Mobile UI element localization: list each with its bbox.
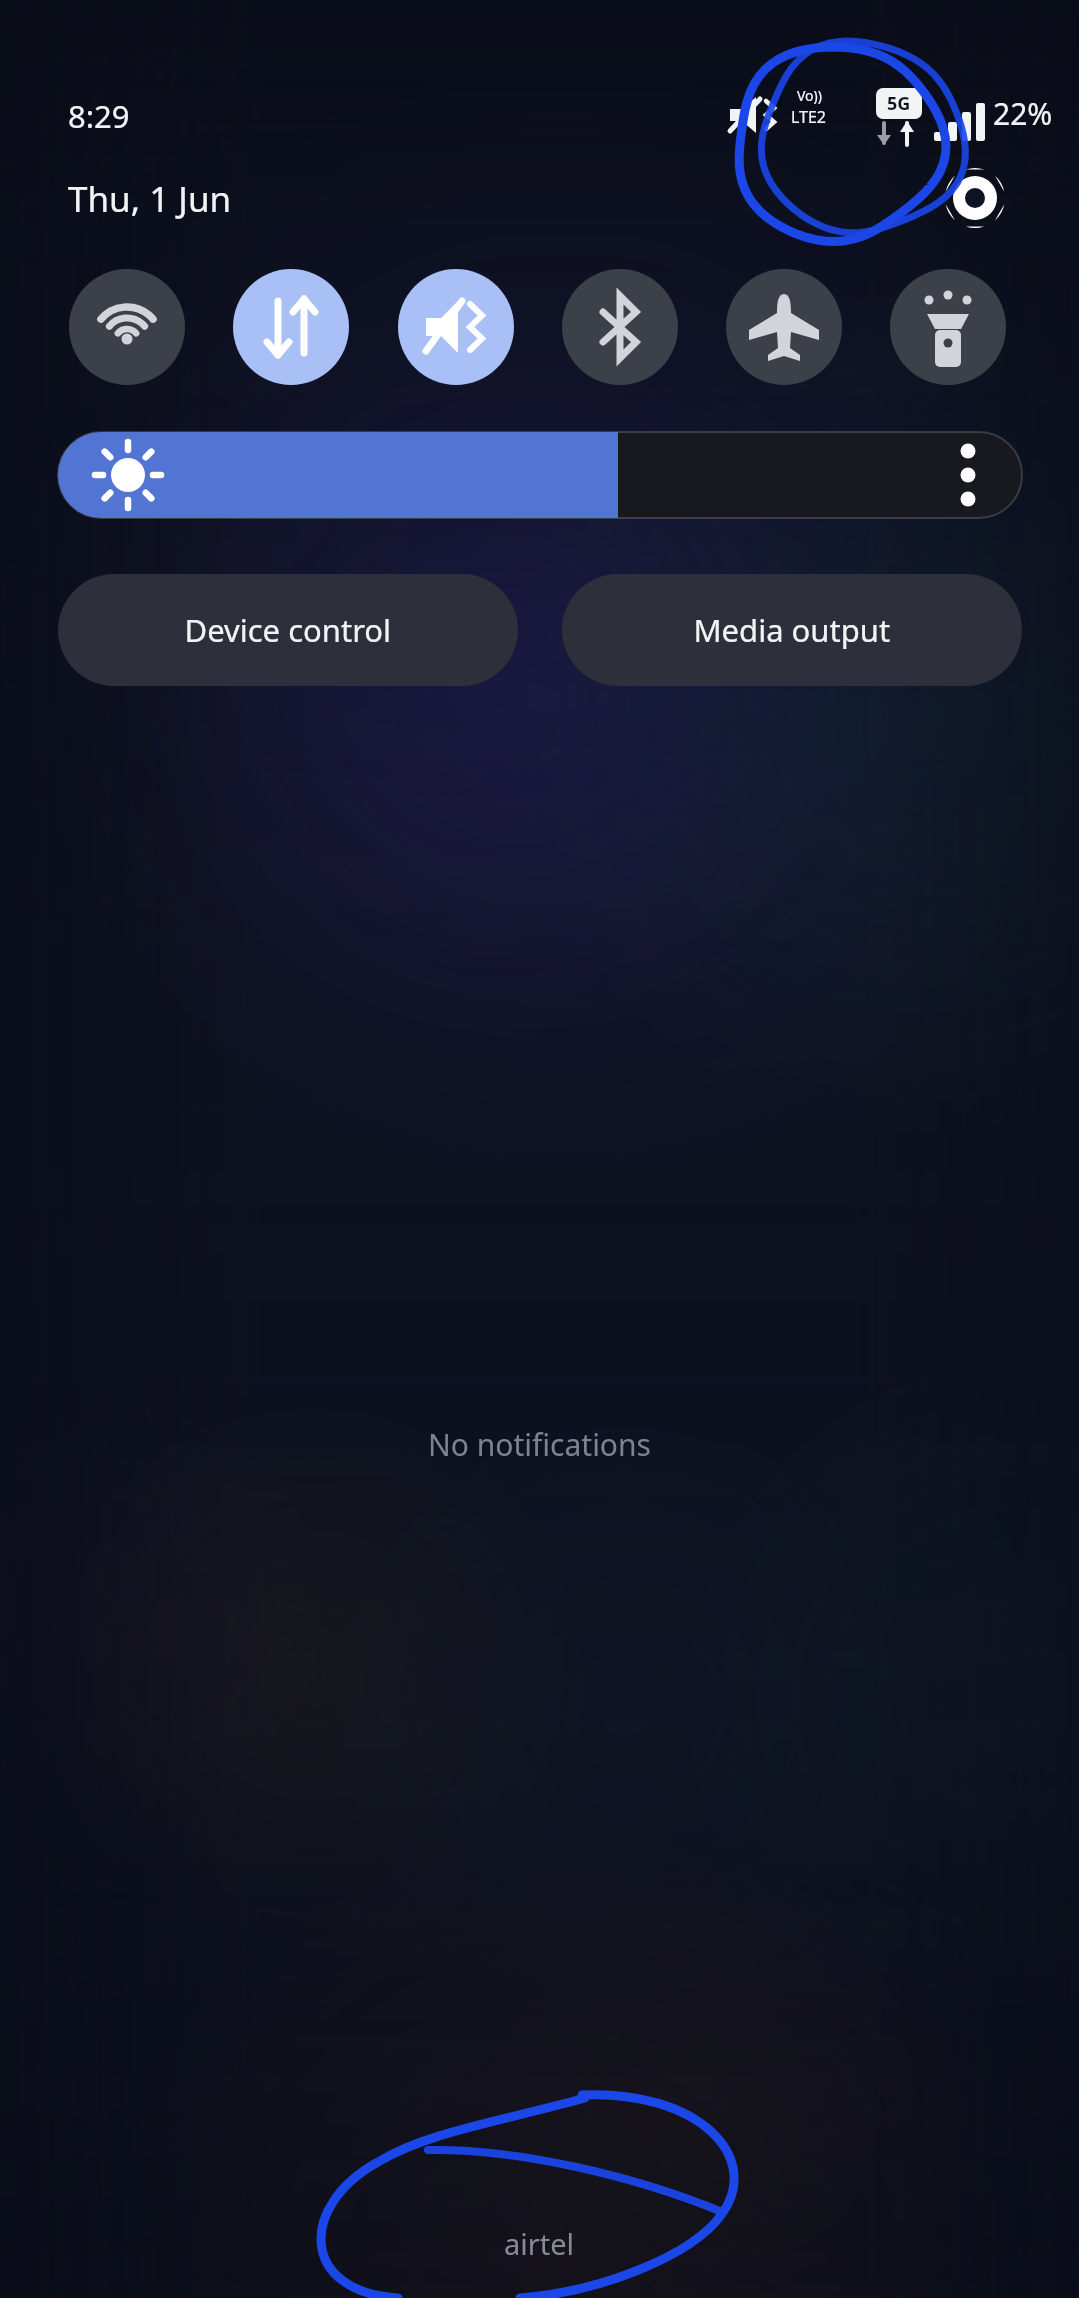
button[interactable]: Brightness options xyxy=(938,432,1022,518)
button[interactable]: Brightness xyxy=(58,432,938,518)
button[interactable]: Date, Thu, 1 Jun xyxy=(68,168,398,234)
button[interactable]: Wi-Fi xyxy=(69,269,185,385)
button[interactable]: Airplane mode xyxy=(726,269,842,385)
button[interactable]: Mobile data xyxy=(233,269,349,385)
button[interactable]: Device control xyxy=(58,574,518,686)
button[interactable]: Media output xyxy=(562,574,1022,686)
button[interactable]: Settings xyxy=(929,152,1021,244)
button[interactable]: Bluetooth xyxy=(562,269,678,385)
button[interactable]: Ring mode xyxy=(398,269,514,385)
button[interactable]: Flashlight xyxy=(890,269,1006,385)
